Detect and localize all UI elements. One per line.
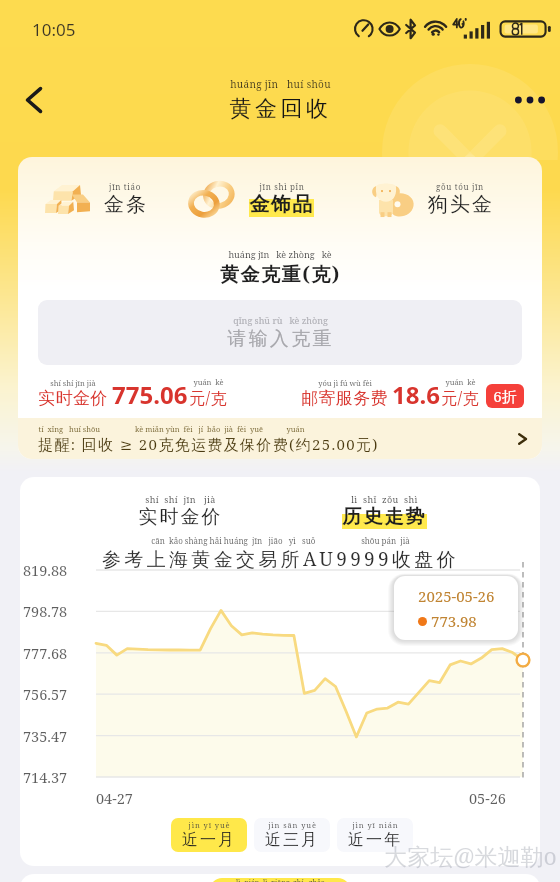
button[interactable]: jīn tiáo xyxy=(42,177,147,221)
staticText: 18.6 xyxy=(392,378,440,411)
staticText: gǒu tóu jīn xyxy=(436,181,484,192)
staticText: 黄金克重(克) xyxy=(220,261,341,287)
staticText: 实时金价 xyxy=(38,388,108,409)
staticText: huáng jīn huí shōu xyxy=(230,77,331,91)
staticText: jìn sān yuè xyxy=(268,820,317,830)
staticText: 04-27 xyxy=(96,788,133,808)
staticText: 798.78 xyxy=(23,601,68,621)
staticText: 实时金价 xyxy=(138,505,223,529)
button[interactable]: tí xǐng huí shōu kè miǎn yùn fèi jí bǎo … xyxy=(18,418,542,459)
staticText: qǐng shū rù kè zhòng xyxy=(233,314,328,326)
staticText: lì shǐ zǒu shì xyxy=(351,493,418,505)
staticText: 775.06 xyxy=(112,378,188,411)
staticText: shí shí jīn jià xyxy=(50,378,96,388)
button[interactable]: qǐng shū rù kè zhòng xyxy=(38,300,522,365)
staticText: jìn yī yuè xyxy=(188,820,231,830)
staticText: tí xǐng huí shōu kè miǎn yùn fèi jí bǎo … xyxy=(38,424,305,434)
staticText: 狗头金 xyxy=(427,192,493,217)
staticText: 元/克 xyxy=(189,387,227,409)
staticText: 黄金回收 xyxy=(229,95,332,123)
button[interactable]: shí shí jīn jià xyxy=(138,493,223,529)
staticText: shí shí jīn jià xyxy=(145,493,216,505)
staticText: jīn shì pǐn xyxy=(259,181,305,192)
button[interactable]: jìn yī yuè xyxy=(171,818,247,852)
staticText: 773.98 xyxy=(431,611,477,631)
button[interactable]: jìn sān yuè xyxy=(254,818,330,852)
button[interactable]: jīn shì pǐn xyxy=(188,177,314,221)
staticText: 777.68 xyxy=(23,643,68,663)
staticText: 金条 xyxy=(103,192,147,217)
button[interactable]: More options xyxy=(506,76,554,124)
staticText: 735.47 xyxy=(23,726,68,746)
staticText: 10:05 xyxy=(32,18,76,41)
staticText: yuán kè xyxy=(193,377,224,387)
staticText: 近三月 xyxy=(265,830,319,850)
staticText: 756.57 xyxy=(23,684,68,704)
staticText: 近一月 xyxy=(182,830,236,850)
staticText: 元/克 xyxy=(441,387,479,409)
staticText: 请输入克重 xyxy=(227,327,334,351)
staticText: 819.88 xyxy=(23,560,68,580)
staticText: jìn yī nián xyxy=(352,820,399,830)
staticText: 参考上海黄金交易所AU9999收盘价 xyxy=(102,546,459,572)
staticText: 大家坛@米迦勒o xyxy=(384,840,557,871)
staticText: 6折 xyxy=(493,386,517,406)
staticText: 714.37 xyxy=(23,767,68,787)
button[interactable]: Back xyxy=(12,78,56,122)
staticText: 近一年 xyxy=(348,830,402,850)
staticText: lì nián lì xiāng zhí zhǎo xyxy=(236,878,325,882)
staticText: 2025-05-26 xyxy=(418,586,495,606)
staticText: cān kǎo shàng hǎi huáng jīn jiāo yì suǒ … xyxy=(151,535,410,546)
button[interactable]: lì nián lì xiāng zhí zhǎo xyxy=(20,874,540,882)
staticText: huáng jīn kè zhòng kè xyxy=(228,248,332,260)
staticText: 邮寄服务费 xyxy=(301,388,388,409)
staticText: yuán kè xyxy=(445,377,476,387)
button[interactable]: lì shǐ zǒu shì xyxy=(342,493,427,529)
staticText: yóu jì fú wù fèi xyxy=(318,378,372,388)
staticText: 提醒: 回收 ≥ 20克免运费及保价费(约25.00元) xyxy=(38,434,379,454)
button[interactable]: gǒu tóu jīn xyxy=(366,177,493,221)
button[interactable]: jìn yī nián xyxy=(337,818,413,852)
button[interactable]: 6折 xyxy=(486,384,524,408)
staticText: 历史走势 xyxy=(342,505,427,529)
staticText: jīn tiáo xyxy=(109,181,141,192)
staticText: 金饰品 xyxy=(249,192,314,217)
staticText: 05-26 xyxy=(469,788,506,808)
